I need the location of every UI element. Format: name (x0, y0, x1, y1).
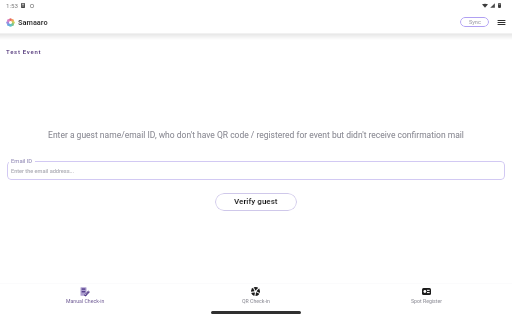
staticText: Verify guest (234, 197, 278, 206)
staticText: Spot Register (411, 298, 442, 304)
staticText: Manual Check-in (66, 298, 105, 304)
staticText: 1:53 (6, 2, 18, 9)
button[interactable]: Verify guest (215, 193, 297, 211)
staticText: Sync (469, 19, 481, 25)
button[interactable]: Enter the email address... (7, 161, 505, 180)
staticText: Enter a guest name/email ID, who don't h… (22, 130, 490, 140)
staticText: QR Check-in (242, 298, 270, 304)
button[interactable]: Manual Check-in (0, 284, 170, 304)
staticText: Enter the email address... (11, 168, 74, 175)
staticText: Email ID (11, 158, 33, 165)
button[interactable]: QR Check-in (170, 284, 341, 304)
staticText: Samaaro (18, 18, 48, 27)
button[interactable]: Menu (497, 18, 505, 27)
staticText: Test Event (6, 48, 42, 55)
button[interactable]: Spot Register (341, 284, 512, 304)
button[interactable]: Sync (460, 17, 489, 27)
